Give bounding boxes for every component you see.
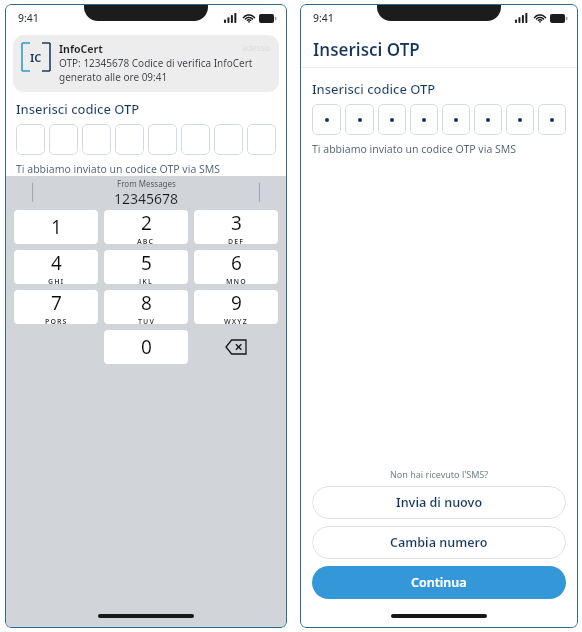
button[interactable]	[474, 104, 502, 135]
button[interactable]: 2	[104, 210, 188, 244]
staticText: Inserisci codice OTP	[16, 100, 140, 118]
staticText: Invia di nuovo	[396, 494, 483, 511]
staticText: 7	[51, 290, 62, 316]
button[interactable]: Continua	[312, 566, 566, 599]
button[interactable]	[214, 124, 243, 155]
staticText: Non hai ricevuto l'SMS?	[390, 468, 489, 480]
staticText: PQRS	[45, 317, 68, 324]
button[interactable]: 9	[194, 290, 278, 324]
button[interactable]	[312, 104, 341, 135]
button[interactable]	[49, 124, 78, 155]
staticText: From Messages	[117, 178, 176, 189]
button[interactable]	[16, 124, 45, 155]
staticText: 3	[231, 210, 242, 236]
staticText: Continua	[411, 574, 467, 591]
button[interactable]	[410, 104, 438, 135]
staticText: Cambia numero	[390, 534, 488, 551]
staticText: ABC	[137, 237, 155, 244]
button[interactable]	[247, 124, 276, 155]
staticText: Inserisci codice OTP	[312, 80, 436, 98]
button[interactable]: 0	[104, 330, 188, 364]
button[interactable]	[181, 124, 210, 155]
staticText: 1	[51, 214, 62, 240]
button[interactable]: Cambia numero	[312, 526, 566, 559]
button[interactable]	[506, 104, 534, 135]
staticText: GHI	[48, 277, 65, 284]
button[interactable]	[82, 124, 111, 155]
button[interactable]: 4	[14, 250, 98, 284]
button[interactable]: adesso	[13, 35, 279, 92]
staticText: 0	[141, 334, 152, 360]
button[interactable]	[442, 104, 470, 135]
button[interactable]	[115, 124, 144, 155]
staticText: adesso	[242, 42, 271, 54]
staticText: Ti abbiamo inviato un codice OTP via SMS	[16, 162, 221, 176]
staticText: Ti abbiamo inviato un codice OTP via SMS	[312, 142, 517, 156]
button[interactable]: 3	[194, 210, 278, 244]
staticText: 8	[141, 290, 152, 316]
staticText: 4	[51, 250, 62, 276]
button[interactable]: 1	[14, 210, 98, 244]
staticText: 9:41	[313, 11, 334, 25]
staticText: OTP: 12345678 Codice di verifica InfoCer…	[59, 56, 271, 84]
staticText: 5	[141, 250, 152, 276]
button[interactable]: 6	[194, 250, 278, 284]
staticText: DEF	[228, 237, 245, 244]
staticText: 6	[231, 250, 242, 276]
staticText: 2	[141, 210, 152, 236]
staticText: TUV	[138, 317, 155, 324]
staticText: InfoCert	[59, 42, 103, 56]
staticText: 12345678	[114, 189, 179, 208]
button[interactable]: 7	[14, 290, 98, 324]
button[interactable]: Invia di nuovo	[312, 486, 566, 519]
staticText: 9:41	[18, 11, 39, 25]
button[interactable]: 8	[104, 290, 188, 324]
staticText: WXYZ	[224, 317, 248, 324]
staticText: IC	[30, 50, 42, 65]
button[interactable]	[538, 104, 566, 135]
button[interactable]	[378, 104, 406, 135]
staticText: 9	[231, 290, 242, 316]
staticText: MNO	[226, 277, 247, 284]
button[interactable]: 5	[104, 250, 188, 284]
button[interactable]	[148, 124, 177, 155]
staticText: JKL	[139, 277, 153, 284]
button[interactable]	[345, 104, 374, 135]
staticText: Inserisci OTP	[313, 38, 420, 61]
button[interactable]: Delete	[194, 330, 278, 364]
